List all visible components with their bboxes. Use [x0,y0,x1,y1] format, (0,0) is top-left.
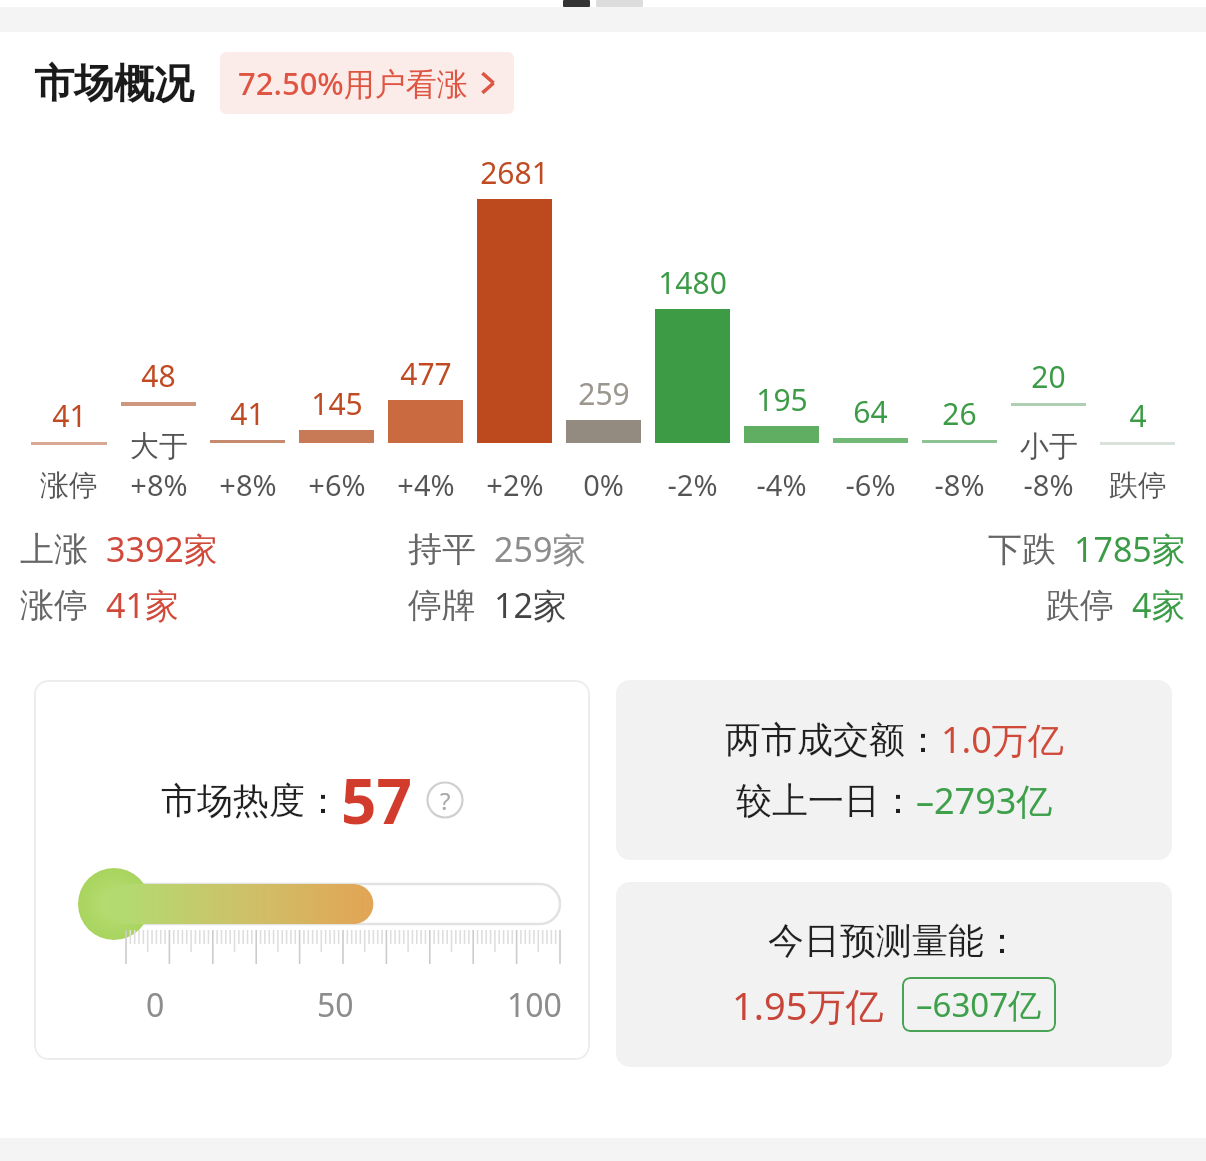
staticText: 26 [942,393,977,434]
staticText: 1785家 [1074,526,1186,572]
button[interactable]: 2681 [470,152,559,504]
staticText: 涨停 [20,584,88,627]
staticText: -8% [1023,465,1074,504]
staticText: 大于 [130,428,188,465]
button[interactable]: 帮助 [426,781,464,819]
staticText: +4% [397,465,455,504]
staticText: 今日预测量能： [768,918,1020,963]
button[interactable]: 1480 [648,262,737,504]
staticText: 4家 [1132,582,1186,628]
staticText: ? [440,784,451,817]
staticText: 跌停 [1109,467,1167,504]
staticText: 涨停 [40,467,98,504]
staticText: 41 [52,395,87,436]
staticText: 上涨 [20,528,88,571]
button[interactable]: 两市成交额： [616,680,1172,860]
staticText: 48 [141,355,176,396]
staticText: 市场概况 [34,58,194,108]
staticText: 小于 [1020,428,1078,465]
staticText: 259家 [494,526,587,572]
staticText: +2% [486,465,544,504]
button[interactable]: 48 [114,355,203,504]
staticText: 259 [578,373,630,414]
staticText: 停牌 [408,584,476,627]
staticText: +6% [308,465,366,504]
staticText: 持平 [408,528,476,571]
staticText: 0 [146,983,165,1027]
staticText: 145 [311,383,363,424]
staticText: 64 [853,391,888,432]
staticText: 两市成交额： [725,717,941,762]
staticText: 57 [341,758,412,842]
staticText: 市场热度： [161,778,341,823]
button[interactable]: 259 [559,373,648,504]
button[interactable]: 477 [381,353,470,504]
staticText: 较上一日： [736,778,916,823]
staticText: 1.0万亿 [941,715,1064,764]
staticText: -6% [845,465,896,504]
button[interactable]: 今日预测量能： [616,882,1172,1067]
staticText: 100 [507,983,562,1027]
staticText: +8% [130,465,188,504]
button[interactable]: 26 [915,393,1004,504]
staticText: 72.50%用户看涨 [238,62,468,104]
button[interactable]: 64 [826,391,915,504]
button[interactable]: 41 [24,395,114,504]
staticText: -8% [934,465,985,504]
staticText: 下跌 [988,528,1056,571]
button[interactable]: 195 [737,379,826,504]
staticText: 50 [317,983,354,1027]
staticText: 2681 [480,152,549,193]
button[interactable]: 20 [1004,356,1093,504]
button[interactable]: 41 [203,393,292,504]
button[interactable]: 145 [292,383,381,504]
staticText: 跌停 [1046,584,1114,627]
staticText: 41家 [106,582,179,628]
button[interactable]: 市场热度： [34,680,590,1060]
staticText: 477 [400,353,452,394]
staticText: 41 [230,393,265,434]
staticText: -2% [667,465,718,504]
staticText: 1480 [658,262,727,303]
staticText: 20 [1031,356,1066,397]
staticText: 195 [756,379,808,420]
staticText: 12家 [494,582,567,628]
staticText: -4% [756,465,807,504]
staticText: –6307亿 [916,982,1042,1027]
staticText: 0% [583,465,624,504]
staticText: 3392家 [106,526,218,572]
button[interactable]: 4 [1093,395,1182,504]
staticText: –2793亿 [916,776,1053,825]
button[interactable]: 72.50%用户看涨 [220,52,514,114]
staticText: +8% [219,465,277,504]
staticText: 1.95万亿 [732,979,884,1031]
staticText: 4 [1129,395,1147,436]
